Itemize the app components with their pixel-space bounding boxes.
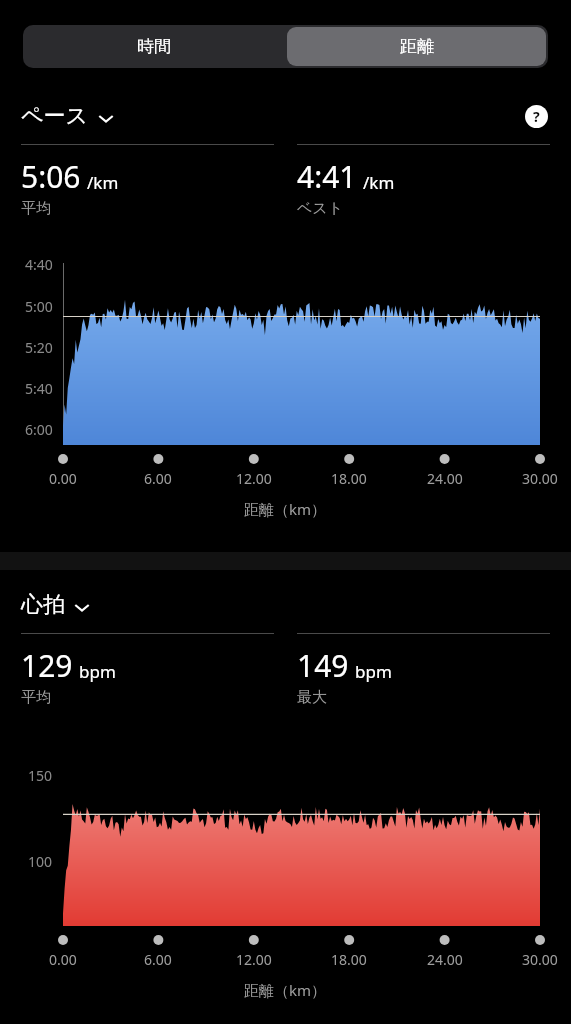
staticText: 30.00 xyxy=(522,950,558,969)
staticText: 心拍 xyxy=(21,591,65,619)
button[interactable]: 129 xyxy=(21,633,274,707)
staticText: bpm xyxy=(79,660,116,683)
staticText: 時間 xyxy=(137,36,171,57)
button[interactable]: 心拍 xyxy=(21,591,90,619)
staticText: 100 xyxy=(28,852,53,871)
staticText: 距離 xyxy=(400,36,434,57)
staticText: ペース xyxy=(21,102,89,130)
staticText: 距離（km） xyxy=(244,499,327,519)
staticText: 6.00 xyxy=(144,469,172,488)
staticText: 4:40 xyxy=(25,255,53,274)
staticText: 0.00 xyxy=(49,950,77,969)
staticText: ベスト xyxy=(297,199,344,218)
staticText: 12.00 xyxy=(236,469,272,488)
staticText: /km xyxy=(87,171,119,194)
staticText: 24.00 xyxy=(427,469,463,488)
staticText: /km xyxy=(363,171,395,194)
staticText: 18.00 xyxy=(331,950,367,969)
staticText: 149 xyxy=(297,645,349,686)
staticText: 5:40 xyxy=(25,379,53,398)
button[interactable]: 5:06 xyxy=(21,144,274,218)
staticText: bpm xyxy=(355,660,392,683)
button[interactable]: Help xyxy=(525,105,548,128)
staticText: 5:06 xyxy=(21,156,81,197)
button[interactable]: 時間 xyxy=(23,25,285,68)
button[interactable]: 距離 xyxy=(287,27,546,66)
staticText: 18.00 xyxy=(331,469,367,488)
staticText: 5:00 xyxy=(25,297,53,316)
button[interactable]: 149 xyxy=(297,633,550,707)
staticText: 0.00 xyxy=(49,469,77,488)
staticText: 24.00 xyxy=(427,950,463,969)
staticText: 平均 xyxy=(21,199,51,218)
button[interactable]: ペース xyxy=(21,102,114,130)
staticText: 6.00 xyxy=(144,950,172,969)
staticText: 30.00 xyxy=(522,469,558,488)
staticText: 最大 xyxy=(297,688,327,707)
button[interactable]: 4:41 xyxy=(297,144,550,218)
staticText: 5:20 xyxy=(25,338,53,357)
staticText: 129 xyxy=(21,645,73,686)
staticText: 150 xyxy=(28,766,53,785)
staticText: 6:00 xyxy=(25,420,53,439)
staticText: 距離（km） xyxy=(244,980,327,1000)
staticText: ? xyxy=(533,107,540,126)
staticText: 平均 xyxy=(21,688,51,707)
staticText: 4:41 xyxy=(297,156,357,197)
staticText: 12.00 xyxy=(236,950,272,969)
